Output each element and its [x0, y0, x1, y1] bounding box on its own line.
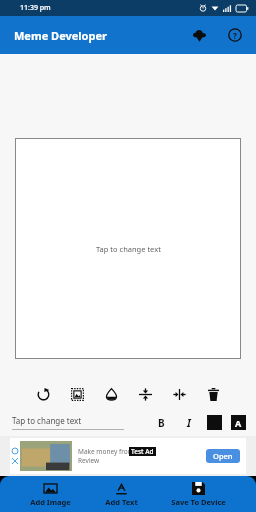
button[interactable]: Help: [224, 24, 246, 46]
staticText: Make money from Music Review: [78, 447, 154, 465]
staticText: Add Text: [105, 497, 138, 507]
staticText: Test Ad: [131, 447, 154, 456]
staticText: B: [158, 416, 165, 430]
button[interactable]: Save To Device: [167, 480, 230, 509]
button[interactable]: Download: [188, 24, 210, 46]
button[interactable]: Add Text: [101, 480, 142, 509]
staticText: Tap to change text: [12, 415, 82, 426]
staticText: Add Image: [30, 497, 71, 507]
button[interactable]: Tap to change text: [12, 415, 124, 430]
button[interactable]: Open: [213, 451, 233, 461]
staticText: I: [187, 416, 191, 430]
button[interactable]: Font: [231, 415, 246, 430]
button[interactable]: Add Image: [26, 480, 75, 509]
staticText: A: [235, 417, 242, 429]
button[interactable]: Make money from Music Review: [10, 438, 246, 474]
staticText: Tap to change text: [96, 244, 161, 254]
button[interactable]: Color: [98, 381, 124, 407]
button[interactable]: B: [151, 413, 171, 433]
button[interactable]: Horizontal align: [166, 381, 192, 407]
button[interactable]: Vertical align: [132, 381, 158, 407]
button[interactable]: Delete: [200, 381, 226, 407]
staticText: Meme Developer: [14, 28, 107, 43]
button[interactable]: I: [179, 413, 199, 433]
button[interactable]: Tap to change text: [15, 138, 241, 359]
button[interactable]: Rotate: [30, 381, 56, 407]
staticText: ?: [233, 30, 237, 41]
staticText: Open: [213, 451, 233, 461]
staticText: 11:39 pm: [20, 3, 51, 13]
button[interactable]: Crop image: [64, 381, 90, 407]
staticText: Save To Device: [171, 497, 226, 507]
